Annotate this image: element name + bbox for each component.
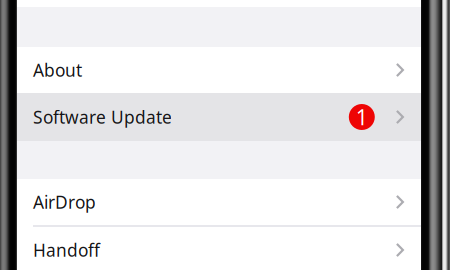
button[interactable]: About (17, 47, 421, 93)
button[interactable]: AirDrop (17, 179, 421, 225)
staticText: AirDrop (33, 190, 96, 213)
button[interactable]: Handoff (17, 227, 421, 270)
staticText: Handoff (33, 238, 100, 261)
staticText: 1 (356, 103, 368, 131)
staticText: About (33, 58, 82, 81)
staticText: Software Update (33, 105, 172, 128)
button[interactable]: Software Update (17, 93, 421, 141)
